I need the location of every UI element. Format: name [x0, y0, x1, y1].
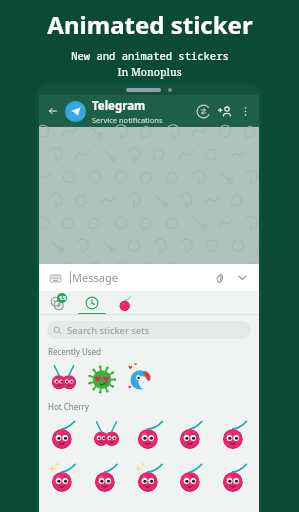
button[interactable]: Cherry sticker: [129, 414, 170, 455]
button[interactable]: Virus in love sticker: [83, 359, 121, 397]
staticText: 15: [59, 294, 66, 302]
button[interactable]: Cherry sticker: [43, 457, 84, 498]
button[interactable]: Sticker sets: [45, 291, 69, 315]
button[interactable]: Cherry sticker: [214, 457, 255, 498]
button[interactable]: Collapse: [233, 268, 252, 287]
staticText: Telegram: [92, 98, 146, 114]
button[interactable]: Back: [44, 102, 62, 120]
staticText: New and animated stickers: [71, 49, 229, 63]
button[interactable]: Cherry sticker: [214, 414, 255, 455]
button[interactable]: Cherry sticker: [86, 414, 127, 455]
staticText: Recently Used: [48, 346, 102, 357]
staticText: Search sticker sets: [67, 324, 150, 337]
button[interactable]: Keyboard: [46, 269, 64, 287]
button[interactable]: Recently used: [77, 291, 107, 315]
button[interactable]: Telegram: [92, 98, 192, 125]
button[interactable]: Cherry sticker: [86, 457, 127, 498]
staticText: Message: [72, 270, 118, 285]
button[interactable]: Profile photo: [65, 101, 86, 122]
staticText: Hot Cherry: [48, 401, 89, 412]
button[interactable]: Twin cherries sticker: [45, 359, 83, 397]
button[interactable]: Cherry sticker: [171, 414, 212, 455]
button[interactable]: Search sticker sets: [47, 321, 251, 339]
staticText: Service notifications: [92, 115, 163, 125]
button[interactable]: Sync: [192, 100, 214, 122]
button[interactable]: Blue character sticker: [121, 359, 159, 397]
button[interactable]: Attach: [210, 268, 229, 287]
staticText: In Monoplus: [117, 65, 182, 79]
button[interactable]: Cherry sticker: [43, 414, 84, 455]
button[interactable]: Add member: [214, 100, 236, 122]
button[interactable]: More options: [236, 102, 254, 120]
button[interactable]: Cherry sticker: [129, 457, 170, 498]
button[interactable]: Message: [72, 270, 210, 285]
staticText: Animated sticker: [47, 8, 253, 41]
button[interactable]: Hot Cherry pack: [113, 291, 137, 315]
button[interactable]: Cherry sticker: [171, 457, 212, 498]
